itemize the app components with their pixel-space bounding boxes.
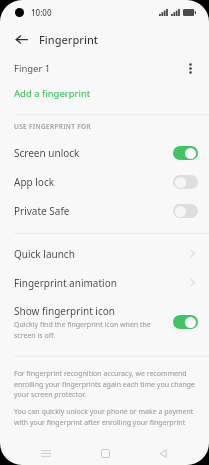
staticText: Fingerprint [39, 32, 99, 47]
button[interactable]: Home [93, 441, 117, 465]
button[interactable]: Show fingerprint icon [0, 297, 209, 349]
button[interactable]: App lock [0, 167, 209, 196]
staticText: Show fingerprint icon [14, 304, 115, 318]
staticText: 10:00 [31, 7, 52, 18]
staticText: USE FINGERPRINT FOR [14, 122, 91, 131]
staticText: Quickly find the fingerprint icon when t… [14, 320, 167, 340]
button[interactable]: Private Safe [0, 196, 209, 225]
button[interactable]: Finger 1 [0, 54, 209, 82]
button[interactable]: Back [10, 28, 32, 50]
staticText: Private Safe [14, 204, 70, 218]
staticText: You can quickly unlock your phone or mak… [14, 407, 198, 427]
staticText: Quick launch [14, 247, 75, 261]
button[interactable]: Recent apps [34, 441, 58, 465]
staticText: Screen unlock [14, 146, 80, 160]
staticText: Finger 1 [14, 62, 51, 75]
staticText: For fingerprint recognition accuracy, we… [14, 369, 198, 399]
button[interactable]: More options [182, 60, 198, 76]
button[interactable]: Screen unlock [0, 138, 209, 167]
staticText: Add a fingerprint [14, 87, 91, 100]
button[interactable]: Back [151, 441, 175, 465]
button[interactable]: Fingerprint animation [0, 268, 209, 297]
staticText: Fingerprint animation [14, 276, 117, 290]
button[interactable]: Quick launch [0, 239, 209, 268]
button[interactable]: Add a fingerprint [0, 82, 209, 104]
staticText: App lock [14, 175, 55, 189]
